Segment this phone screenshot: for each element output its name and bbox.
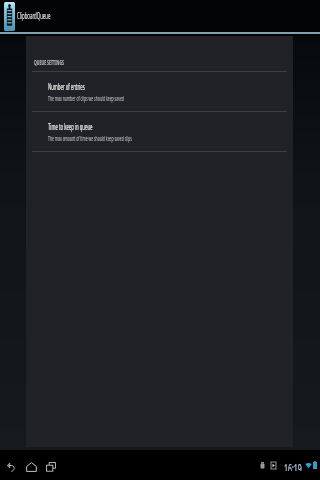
button[interactable]: Home (21, 450, 41, 480)
staticText: The max amount of time we should keep sa… (48, 134, 132, 143)
staticText: Time to keep in queue (48, 121, 92, 133)
staticText: The max number of clips we should keep s… (48, 94, 124, 103)
button[interactable]: Back (1, 450, 21, 480)
staticText: QUEUE SETTINGS (34, 57, 64, 66)
staticText: 16:19 (284, 459, 302, 471)
button[interactable]: Recent apps (41, 450, 61, 480)
button[interactable]: Time to keep in queue (26, 112, 293, 151)
staticText: ClipboardQueue (17, 10, 50, 22)
button[interactable]: Number of entries (26, 72, 293, 111)
staticText: Number of entries (48, 81, 85, 93)
